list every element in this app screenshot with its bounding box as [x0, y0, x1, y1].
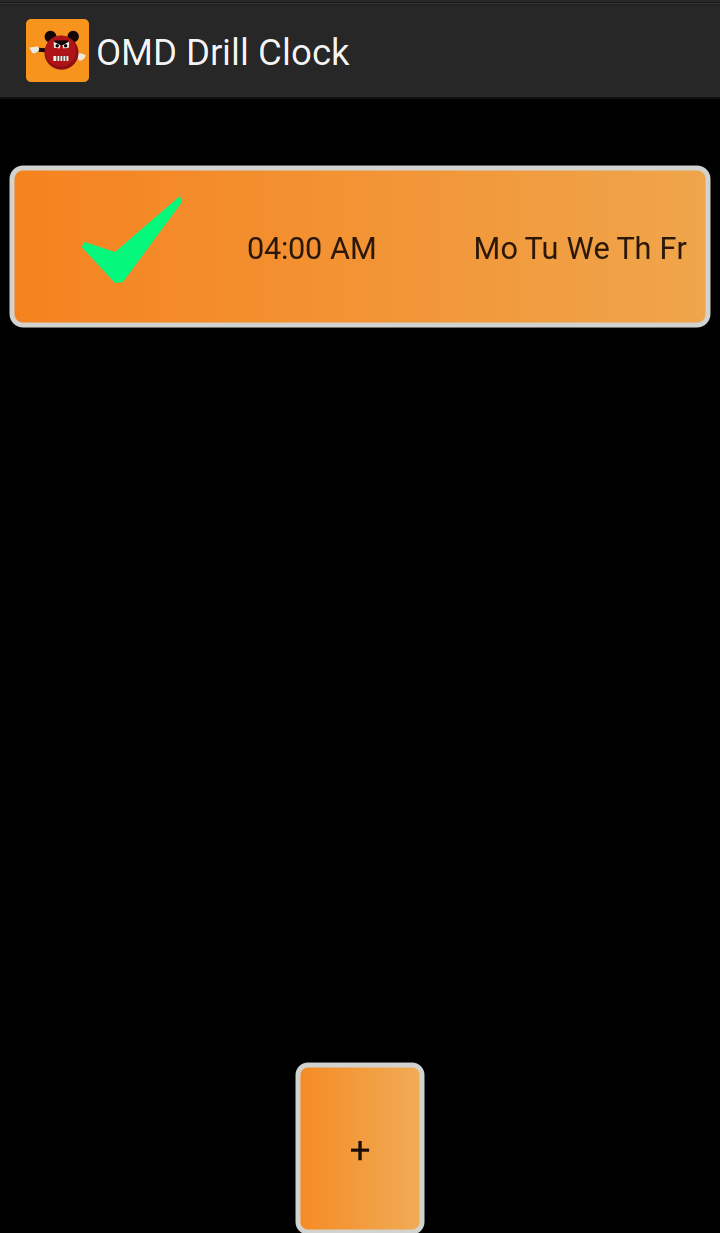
staticText: 04:00 AM	[247, 230, 377, 266]
button[interactable]: Add alarm	[298, 1065, 422, 1232]
staticText: +	[349, 1128, 370, 1172]
button[interactable]: OMD Drill Clock	[0, 0, 380, 97]
staticText: OMD Drill Clock	[96, 31, 350, 74]
staticText: Mo Tu We Th Fr	[473, 230, 686, 266]
button[interactable]: 04:00 AM	[12, 168, 708, 325]
